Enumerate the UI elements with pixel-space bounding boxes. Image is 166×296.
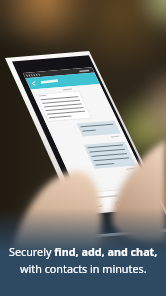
staticText: Securely find, add, and chat,: [9, 244, 158, 259]
staticText: with contacts in minutes.: [20, 261, 147, 276]
